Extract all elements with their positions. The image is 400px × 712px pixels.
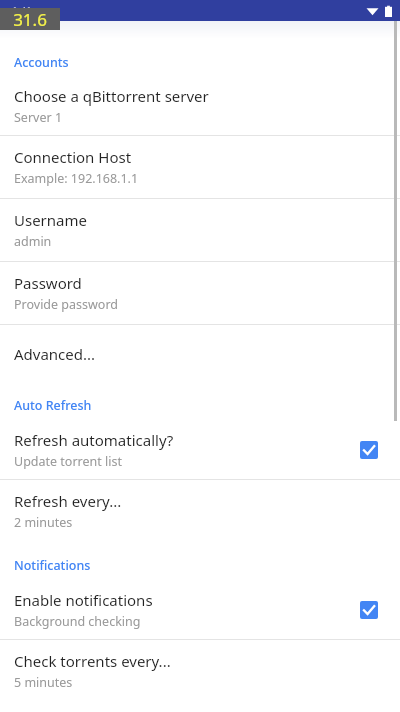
staticText: Accounts bbox=[14, 54, 69, 71]
staticText: 31.6 bbox=[13, 8, 47, 30]
staticText: Check torrents every... bbox=[14, 651, 171, 671]
staticText: Auto Refresh bbox=[14, 397, 92, 414]
button[interactable]: Check torrents every... bbox=[0, 640, 400, 702]
staticText: Example: 192.168.1.1 bbox=[14, 170, 139, 187]
button[interactable]: Refresh every... bbox=[0, 480, 400, 542]
staticText: Choose a qBittorrent server bbox=[14, 86, 209, 106]
staticText: Update torrent list bbox=[14, 453, 122, 470]
staticText: Password bbox=[14, 273, 82, 293]
staticText: Advanced... bbox=[14, 344, 96, 364]
staticText: Notifications bbox=[14, 557, 91, 574]
staticText: admin bbox=[14, 233, 52, 250]
button[interactable]: Refresh automatically? bbox=[352, 433, 386, 467]
staticText: 2 minutes bbox=[14, 514, 73, 531]
button[interactable]: Enable notifications bbox=[352, 593, 386, 627]
button[interactable]: Username bbox=[0, 199, 400, 261]
staticText: Username bbox=[14, 210, 87, 230]
staticText: Server 1 bbox=[14, 109, 63, 126]
button[interactable]: Enable notifications bbox=[0, 580, 400, 639]
button[interactable]: Advanced... bbox=[0, 325, 400, 382]
staticText: Enable notifications bbox=[14, 590, 153, 610]
button[interactable]: Connection Host bbox=[0, 136, 400, 198]
button[interactable]: Choose a qBittorrent server bbox=[0, 77, 400, 135]
staticText: 1:41 bbox=[12, 4, 32, 18]
other: Temperature overlay 31.6 bbox=[0, 8, 60, 30]
button[interactable]: Refresh automatically? bbox=[0, 420, 400, 479]
staticText: 5 minutes bbox=[14, 674, 73, 691]
staticText: Background checking bbox=[14, 613, 141, 630]
staticText: Refresh automatically? bbox=[14, 430, 174, 450]
button[interactable]: Password bbox=[0, 262, 400, 324]
staticText: Provide password bbox=[14, 296, 119, 313]
staticText: Connection Host bbox=[14, 147, 132, 167]
staticText: Refresh every... bbox=[14, 491, 122, 511]
